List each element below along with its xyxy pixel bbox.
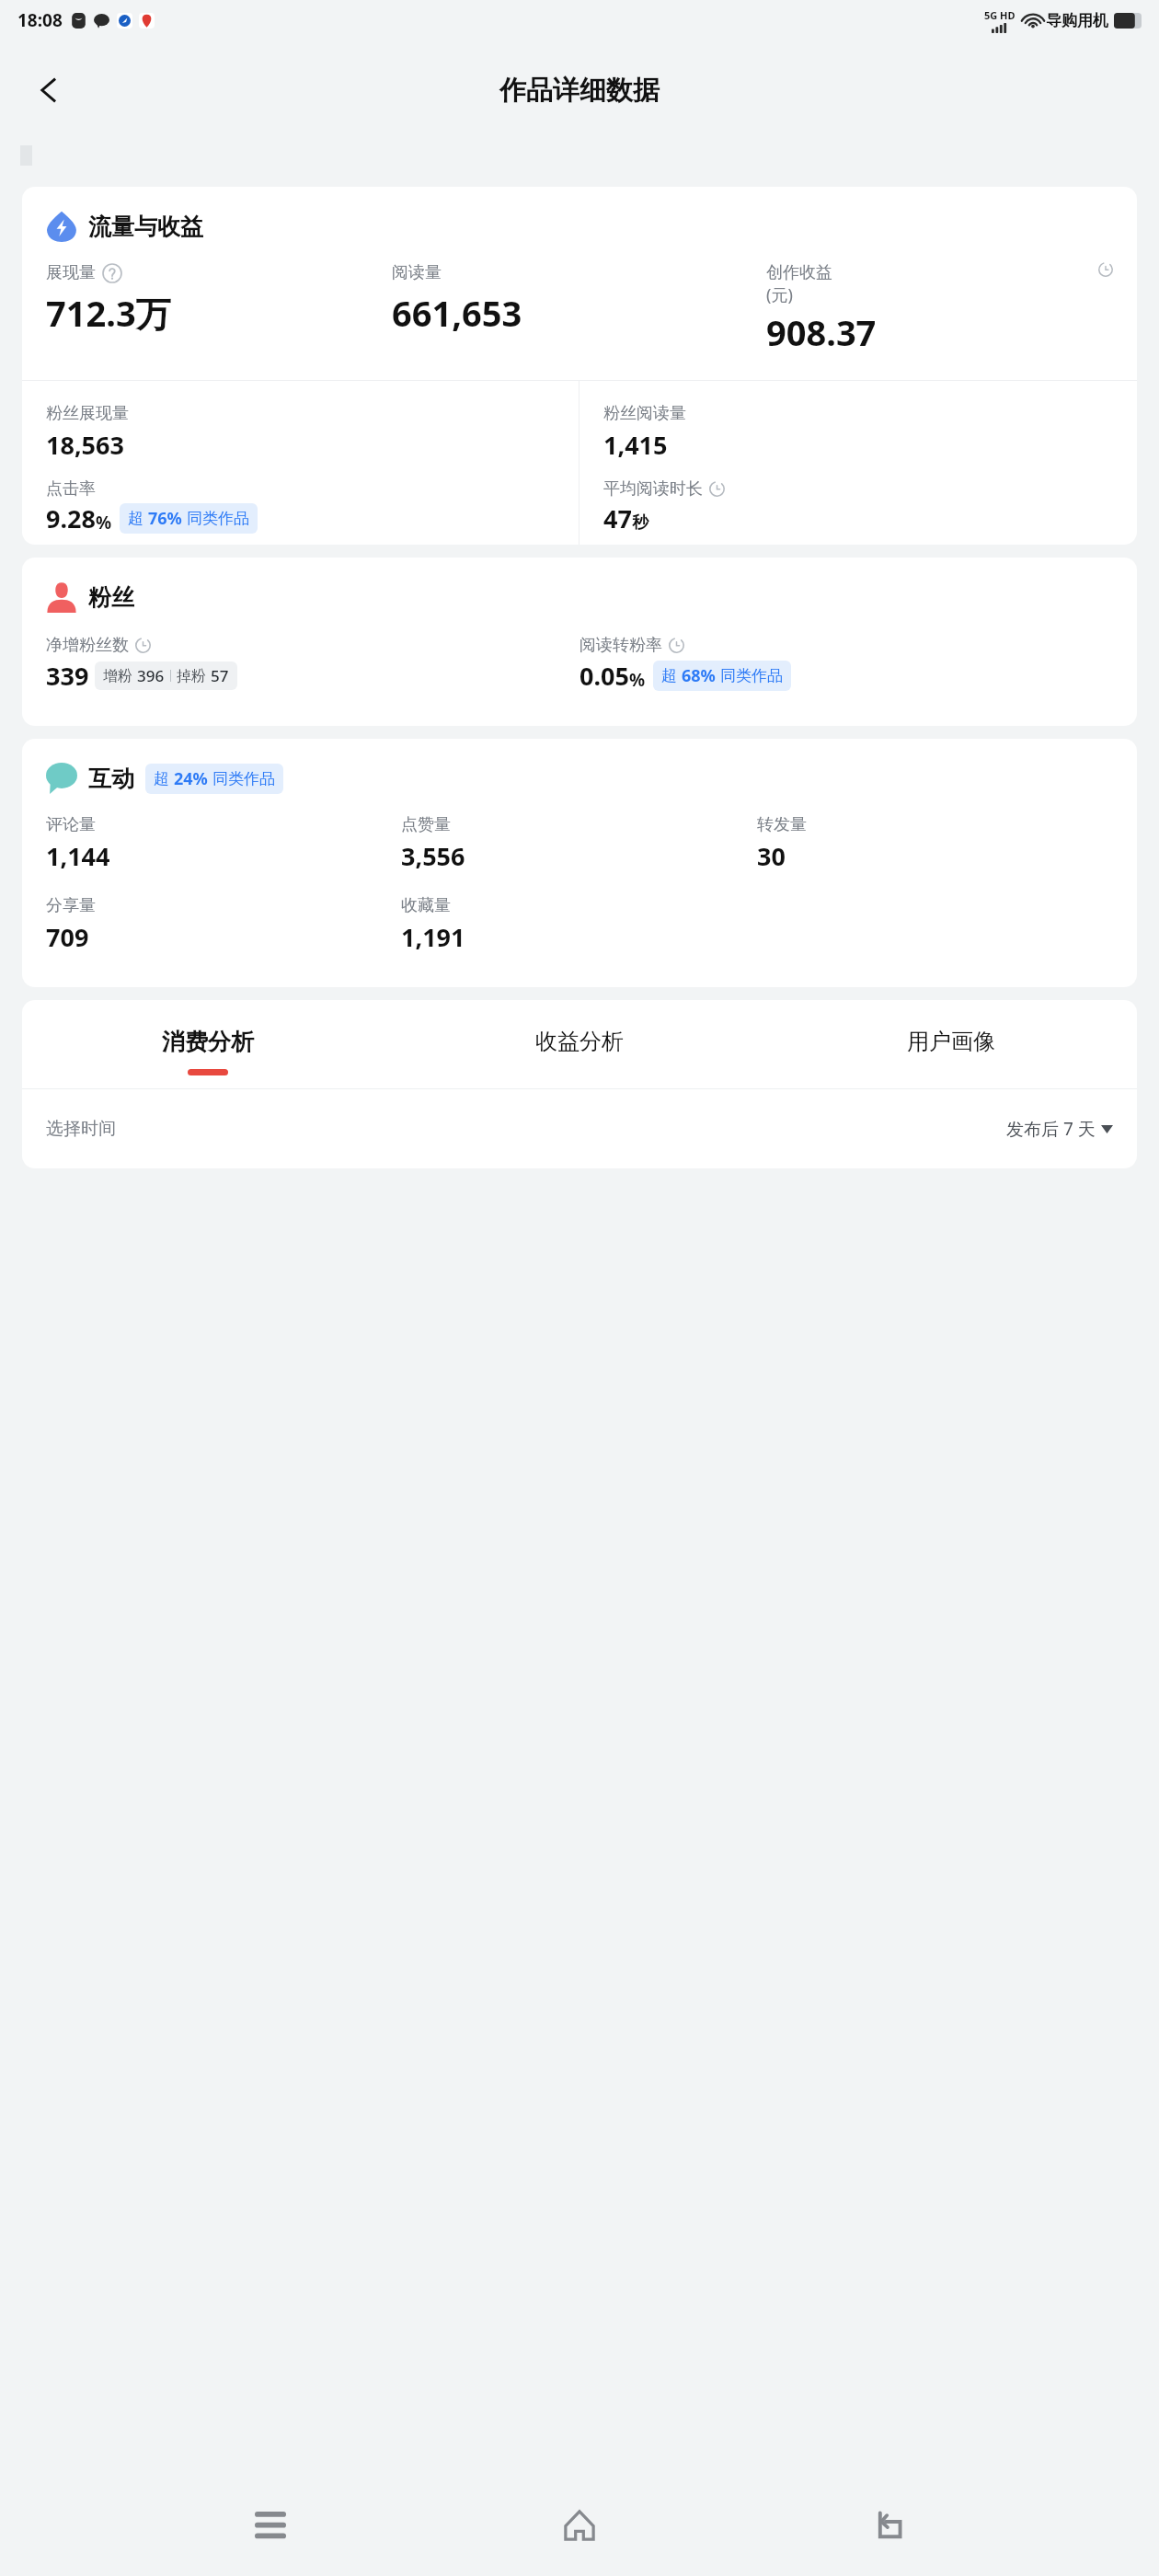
staticText: 同类作品	[187, 509, 249, 528]
staticText: 展现量	[46, 262, 96, 283]
staticText: %	[96, 511, 112, 535]
staticText: 粉丝	[88, 583, 134, 612]
staticText: 908.37	[766, 308, 877, 356]
staticText: 同类作品	[720, 666, 783, 685]
staticText: 同类作品	[212, 769, 275, 788]
staticText: 消费分析	[162, 1028, 254, 1056]
staticText: 1,191	[401, 920, 465, 954]
staticText: 1,415	[603, 428, 668, 462]
staticText: 创作收益	[766, 262, 832, 283]
staticText: 5G HD	[984, 8, 1016, 22]
staticText: 增粉	[103, 667, 132, 685]
staticText: %	[629, 668, 646, 692]
staticText: 转发量	[757, 814, 807, 835]
staticText: 709	[46, 920, 89, 954]
staticText: 导购用机	[1046, 11, 1108, 30]
button[interactable]: 用户画像	[765, 1028, 1137, 1075]
staticText: 秒	[632, 512, 648, 534]
staticText: 粉丝展现量	[46, 403, 129, 424]
button[interactable]: 发布后 7 天	[1006, 1117, 1113, 1141]
staticText: 339	[46, 659, 89, 693]
staticText: 点击率	[46, 478, 96, 500]
staticText: 净增粉丝数	[46, 635, 129, 656]
button[interactable]: 收益分析	[394, 1028, 765, 1075]
staticText: 1,144	[46, 839, 110, 873]
button[interactable]: Back	[850, 2486, 929, 2565]
staticText: 收益分析	[535, 1028, 624, 1055]
staticText: 粉丝阅读量	[603, 403, 686, 424]
staticText: 712.3万	[46, 289, 171, 337]
staticText: 作品详细数据	[499, 74, 660, 108]
staticText: 9.28	[46, 501, 96, 535]
staticText: 互动	[88, 765, 134, 793]
staticText: 收藏量	[401, 895, 451, 916]
button[interactable]: Recents	[231, 2486, 310, 2565]
staticText: 18:08	[17, 8, 63, 32]
staticText: 47	[603, 501, 632, 535]
staticText: 0.05	[579, 659, 629, 693]
staticText: (元)	[766, 283, 793, 306]
staticText: 24%	[174, 767, 208, 790]
staticText: 396	[137, 665, 165, 686]
staticText: 3,556	[401, 839, 465, 873]
staticText: 用户画像	[907, 1028, 995, 1055]
staticText: 68%	[682, 664, 716, 687]
staticText: 阅读量	[392, 262, 442, 283]
staticText: 评论量	[46, 814, 96, 835]
staticText: 选择时间	[46, 1118, 116, 1140]
button[interactable]: Home	[540, 2486, 619, 2565]
staticText: 掉粉	[177, 667, 206, 685]
staticText: 30	[757, 839, 786, 873]
staticText: 平均阅读时长	[603, 478, 703, 500]
staticText: 流量与收益	[88, 213, 203, 241]
staticText: 阅读转粉率	[579, 635, 662, 656]
staticText: 超	[154, 769, 169, 788]
button[interactable]: Back	[24, 65, 74, 115]
staticText: 超	[128, 509, 143, 528]
staticText: 76%	[148, 507, 182, 530]
button[interactable]: 消费分析	[22, 1028, 394, 1075]
staticText: 57	[211, 665, 229, 686]
staticText: 18,563	[46, 428, 124, 462]
staticText: 661,653	[392, 289, 522, 337]
staticText: 分享量	[46, 895, 96, 916]
staticText: 超	[661, 666, 677, 685]
staticText: 点赞量	[401, 814, 451, 835]
staticText: 发布后 7 天	[1006, 1117, 1096, 1141]
